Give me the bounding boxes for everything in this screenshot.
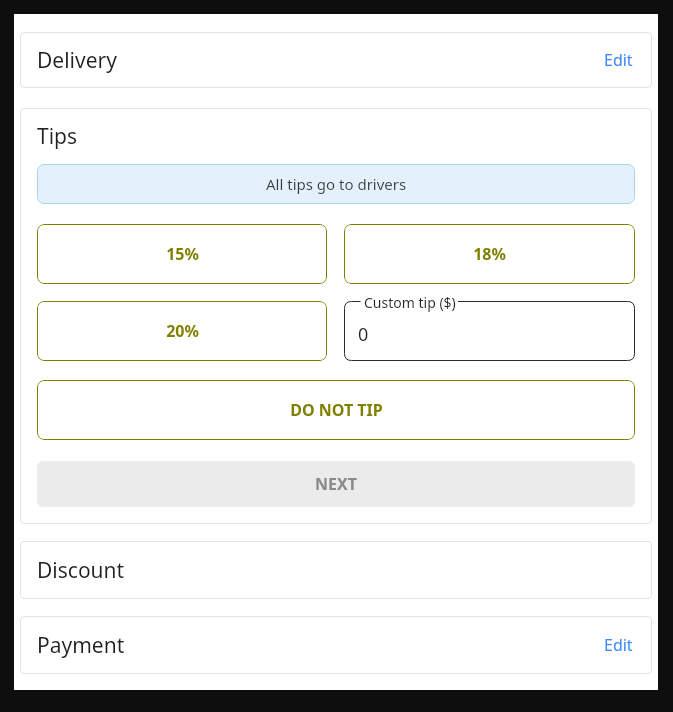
staticText: 20% [166,320,199,342]
button[interactable]: Payment [20,616,652,674]
button[interactable]: Edit [602,630,635,660]
button[interactable]: 18% [344,224,635,284]
staticText: Payment [37,631,125,660]
staticText: Custom tip ($) [364,293,456,312]
button[interactable]: Discount [20,541,652,599]
staticText: 15% [166,243,199,265]
staticText: 18% [473,243,506,265]
staticText: Delivery [37,46,117,75]
button[interactable]: Custom tip ($) [344,301,635,361]
staticText: All tips go to drivers [266,174,407,194]
staticText: Edit [604,634,633,656]
staticText: NEXT [315,473,357,495]
staticText: DO NOT TIP [290,399,383,421]
staticText: 0 [358,322,369,347]
button[interactable]: Delivery [20,32,652,88]
staticText: Edit [604,49,633,71]
button[interactable]: Edit [602,45,635,75]
button[interactable]: DO NOT TIP [37,380,635,440]
button[interactable]: NEXT [37,461,635,507]
button[interactable]: 15% [37,224,327,284]
staticText: Tips [37,122,78,151]
staticText: Discount [37,556,125,585]
button[interactable]: 20% [37,301,327,361]
